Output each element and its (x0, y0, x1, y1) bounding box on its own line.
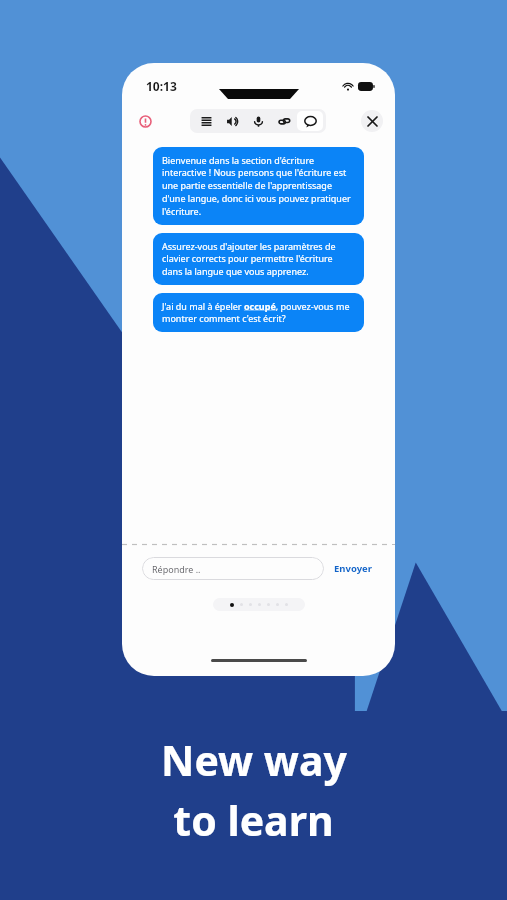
button[interactable]: Assurez-vous d'ajouter les paramètres de… (153, 233, 364, 285)
staticText: Assurez-vous d'ajouter les paramètres de… (162, 240, 355, 278)
button[interactable]: Microphone (245, 109, 271, 133)
button[interactable]: Menu (193, 109, 219, 133)
button[interactable]: Link (271, 109, 297, 133)
staticText: Répondre .. (152, 563, 201, 575)
staticText: New way (161, 732, 347, 788)
button[interactable]: Information (134, 110, 156, 132)
staticText: Bienvenue dans la section d'écriture int… (162, 154, 355, 218)
staticText: J'ai du mal à épeler occupé, pouvez-vous… (162, 300, 355, 325)
button[interactable]: Sound (219, 109, 245, 133)
button[interactable]: J'ai du mal à épeler occupé, pouvez-vous… (153, 293, 364, 332)
staticText: 10:13 (146, 78, 177, 94)
staticText: to learn (173, 792, 334, 848)
button[interactable]: Chat (297, 111, 323, 131)
button[interactable]: Bienvenue dans la section d'écriture int… (153, 147, 364, 225)
button[interactable]: Envoyer (332, 562, 375, 575)
button[interactable]: Répondre .. (142, 557, 324, 580)
button[interactable]: Close (361, 110, 383, 132)
staticText: Envoyer (334, 562, 373, 575)
